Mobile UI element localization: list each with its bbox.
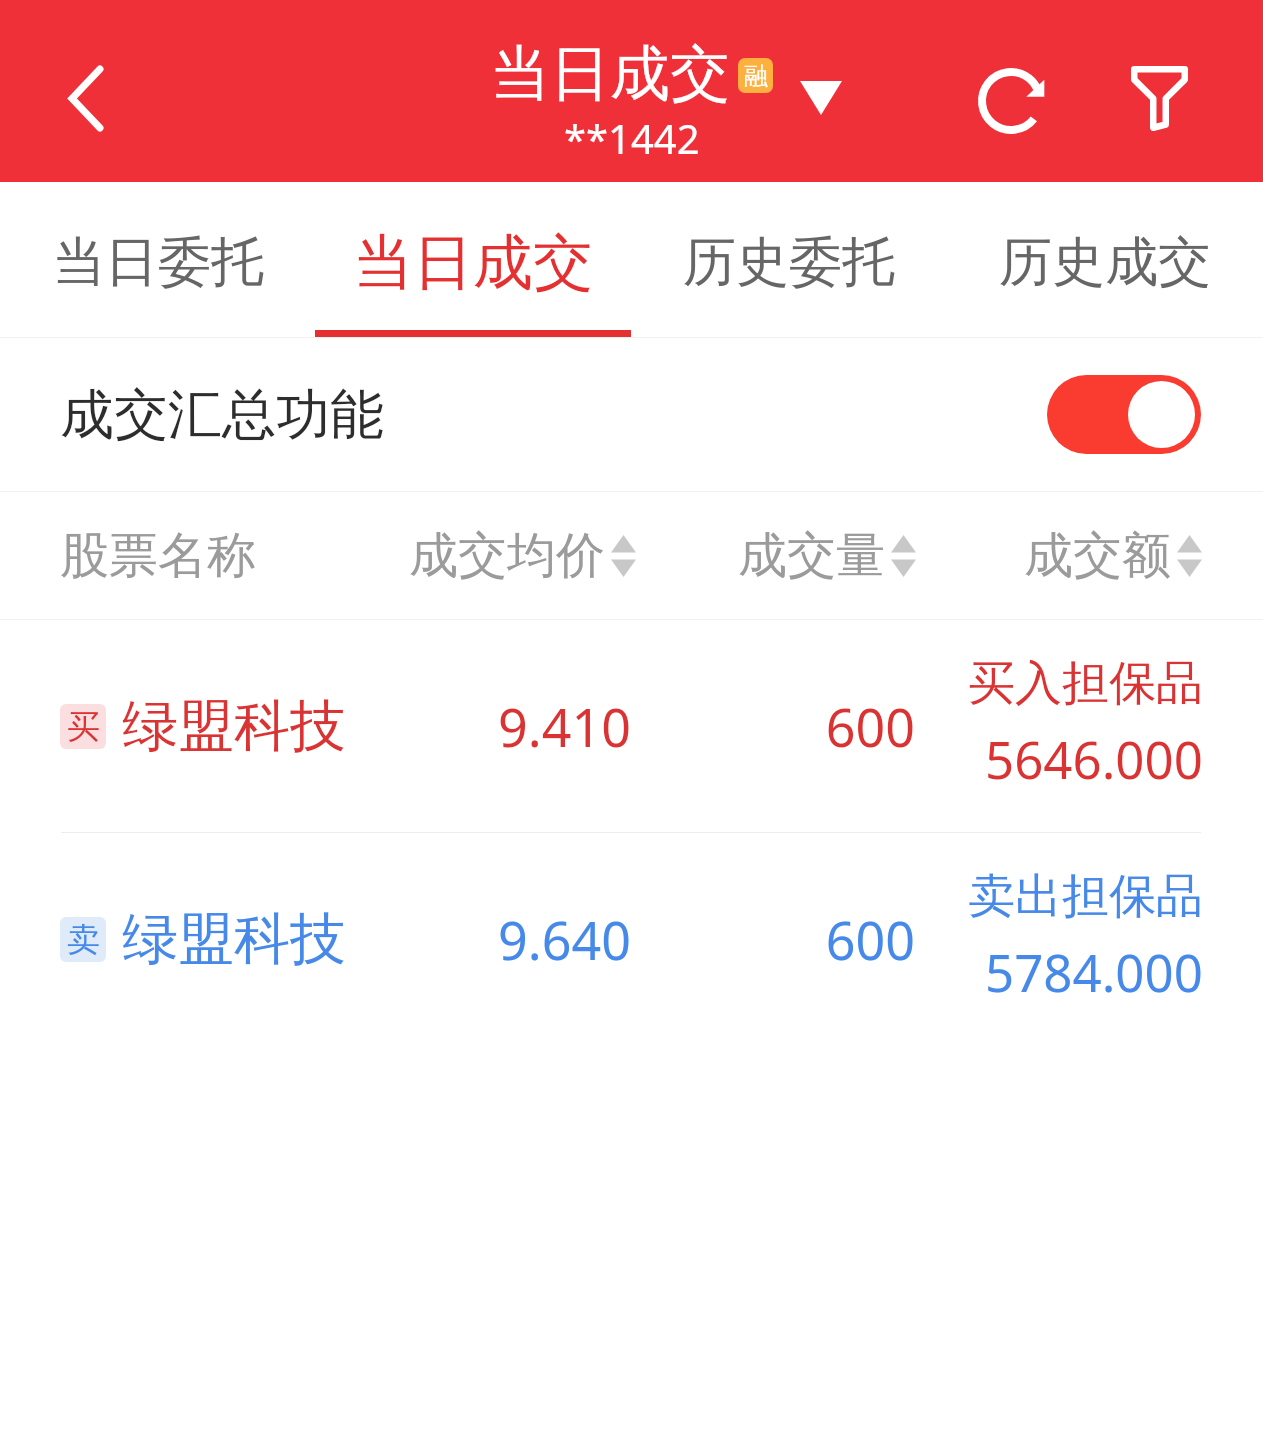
staticText: 当日委托 [52, 229, 264, 296]
staticText: 卖出担保品 [968, 867, 1203, 926]
staticText: 历史成交 [999, 229, 1211, 296]
button[interactable]: 成交量 [738, 525, 916, 587]
button[interactable]: Switch account [786, 63, 856, 133]
button[interactable]: Refresh [956, 43, 1066, 153]
staticText: 绿盟科技 [122, 691, 346, 762]
staticText: 融 [744, 61, 768, 91]
staticText: 成交量 [738, 525, 885, 587]
staticText: 买入担保品 [968, 654, 1203, 713]
staticText: **1442 [564, 111, 700, 165]
staticText: 9.410 [200, 691, 631, 762]
button[interactable]: 历史成交 [947, 182, 1263, 337]
button[interactable]: 买 [0, 620, 1263, 832]
button[interactable]: Back [31, 43, 141, 153]
button[interactable]: 历史委托 [631, 182, 947, 337]
button[interactable]: 成交汇总功能 [0, 338, 1263, 491]
button[interactable]: Filter [1104, 43, 1214, 153]
staticText: 当日成交 [353, 225, 593, 301]
staticText: 600 [640, 691, 915, 762]
staticText: 买 [67, 706, 100, 748]
staticText: 绿盟科技 [122, 904, 346, 975]
staticText: 5646.000 [985, 724, 1203, 793]
staticText: 当日成交 [490, 36, 730, 112]
staticText: 卖 [67, 919, 100, 961]
staticText: 5784.000 [985, 937, 1203, 1006]
button[interactable]: 当日成交 [315, 182, 631, 337]
staticText: 成交额 [1024, 525, 1171, 587]
button[interactable]: 成交额 [1024, 525, 1202, 587]
staticText: 9.640 [200, 904, 631, 975]
button[interactable]: 成交均价 [409, 525, 636, 587]
staticText: 600 [640, 904, 915, 975]
button[interactable]: 当日委托 [0, 182, 315, 337]
staticText: 成交均价 [409, 525, 605, 587]
button[interactable]: 卖 [0, 833, 1263, 1045]
staticText: 历史委托 [683, 229, 895, 296]
staticText: 股票名称 [60, 525, 256, 587]
button[interactable]: 成交汇总功能开关 [1047, 375, 1201, 454]
staticText: 成交汇总功能 [60, 381, 384, 449]
